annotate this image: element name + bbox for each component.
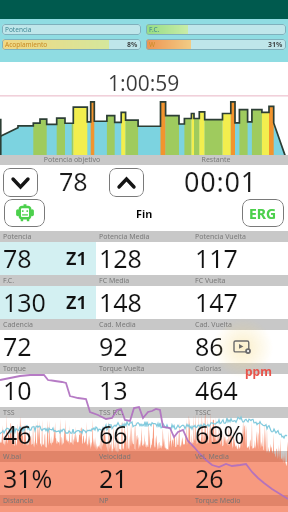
button[interactable] xyxy=(96,286,192,319)
staticText: TSSC xyxy=(195,408,212,418)
button[interactable]: 26 xyxy=(192,462,288,495)
staticText: 128 xyxy=(99,241,142,274)
button[interactable]: Acoplamiento xyxy=(2,39,141,50)
button[interactable] xyxy=(0,242,96,275)
staticText: ppm xyxy=(245,363,272,379)
button[interactable] xyxy=(0,330,96,363)
staticText: 92 xyxy=(99,329,128,362)
button[interactable] xyxy=(192,418,288,451)
button[interactable] xyxy=(96,330,192,363)
staticText: 72 xyxy=(3,329,32,362)
button[interactable]: 69% xyxy=(192,418,288,451)
staticText: 21 xyxy=(99,461,128,494)
staticText: Fin xyxy=(136,206,153,221)
button[interactable]: 31% xyxy=(0,462,96,495)
staticText: Torque xyxy=(3,364,26,374)
button[interactable] xyxy=(192,286,288,319)
staticText: 464 xyxy=(195,373,238,406)
button[interactable] xyxy=(192,330,288,363)
button[interactable]: F.C. xyxy=(146,24,286,35)
staticText: Torque Vuelta xyxy=(99,364,145,374)
button[interactable] xyxy=(96,374,192,407)
button[interactable]: Increase target power xyxy=(109,168,144,197)
staticText: F.C. xyxy=(149,25,160,34)
button[interactable]: Screen settings xyxy=(232,337,254,359)
staticText: TSS xyxy=(3,408,15,418)
button[interactable] xyxy=(0,374,96,407)
staticText: Acoplamiento xyxy=(5,40,48,49)
staticText: 31% xyxy=(268,40,283,50)
button[interactable] xyxy=(96,418,192,451)
staticText: Potencia Media xyxy=(99,232,150,242)
staticText: 31% xyxy=(3,461,53,494)
staticText: Potencia xyxy=(5,25,32,34)
staticText: Potencia objetivo xyxy=(0,155,144,165)
staticText: 117 xyxy=(195,241,238,274)
button[interactable]: 92 xyxy=(96,330,192,363)
staticText: Potencia xyxy=(3,232,32,242)
staticText: Vel. Media xyxy=(195,452,229,462)
button[interactable]: Potencia xyxy=(2,24,141,35)
button[interactable]: 86 xyxy=(192,330,288,363)
button[interactable]: 72 xyxy=(0,330,96,363)
staticText: 8% xyxy=(127,40,138,50)
staticText: 26 xyxy=(195,461,224,494)
staticText: 148 xyxy=(99,285,142,318)
button[interactable] xyxy=(96,462,192,495)
button[interactable]: Decrease target power xyxy=(3,168,38,197)
staticText: 69% xyxy=(195,417,245,450)
staticText: Restante xyxy=(144,155,288,165)
staticText: W xyxy=(149,40,156,49)
staticText: 00:01 xyxy=(184,163,258,192)
button[interactable]: 148 xyxy=(96,286,192,319)
button[interactable] xyxy=(0,286,96,319)
button[interactable]: 130 xyxy=(0,286,96,319)
button[interactable] xyxy=(0,418,96,451)
button[interactable]: Auto ERG robot mode xyxy=(4,199,45,227)
staticText: Velocidad xyxy=(99,452,131,462)
button[interactable]: 147 xyxy=(192,286,288,319)
staticText: Cad. Media xyxy=(99,320,136,330)
button[interactable]: W xyxy=(146,39,286,50)
staticText: 1:00:59 xyxy=(108,69,180,98)
staticText: W.bal xyxy=(3,452,22,462)
staticText: 147 xyxy=(195,285,238,318)
staticText: FC Media xyxy=(99,276,130,286)
staticText: 78 xyxy=(3,241,32,274)
staticText: 13 xyxy=(99,373,128,406)
button[interactable] xyxy=(192,462,288,495)
staticText: Calorias xyxy=(195,364,222,374)
staticText: Z1 xyxy=(66,246,87,271)
button[interactable]: 464 xyxy=(192,374,288,407)
staticText: Cadencia xyxy=(3,320,34,330)
staticText: TSS F.C. xyxy=(99,408,124,418)
button[interactable] xyxy=(192,242,288,275)
staticText: Distancia xyxy=(3,496,34,506)
staticText: Potencia Vuelta xyxy=(195,232,246,242)
staticText: 78 xyxy=(59,164,88,193)
button[interactable]: 10 xyxy=(0,374,96,407)
staticText: NP xyxy=(99,496,109,506)
staticText: Cad. Vuelta xyxy=(195,320,233,330)
staticText: 86 xyxy=(195,329,224,362)
staticText: 10 xyxy=(3,373,32,406)
button[interactable] xyxy=(192,374,288,407)
button[interactable]: ERG xyxy=(242,199,284,227)
button[interactable]: 21 xyxy=(96,462,192,495)
staticText: ERG xyxy=(249,204,277,223)
button[interactable]: 128 xyxy=(96,242,192,275)
staticText: F.C. xyxy=(3,276,15,286)
button[interactable]: 66 xyxy=(96,418,192,451)
button[interactable]: 117 xyxy=(192,242,288,275)
staticText: Z1 xyxy=(66,290,87,315)
staticText: 46 xyxy=(3,417,32,450)
button[interactable] xyxy=(96,242,192,275)
button[interactable]: 78 xyxy=(0,242,96,275)
button[interactable] xyxy=(0,462,96,495)
button[interactable]: 13 xyxy=(96,374,192,407)
button[interactable]: 46 xyxy=(0,418,96,451)
staticText: FC Vuelta xyxy=(195,276,226,286)
staticText: Torque Medio xyxy=(195,496,241,506)
staticText: 130 xyxy=(3,285,46,318)
staticText: 66 xyxy=(99,417,128,450)
